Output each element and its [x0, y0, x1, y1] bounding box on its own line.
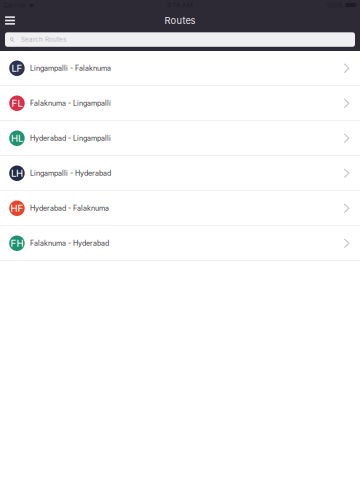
staticText: FL: [11, 97, 22, 109]
staticText: Falaknuma - Hyderabad: [30, 239, 109, 247]
staticText: Search Routes: [21, 36, 66, 43]
button[interactable]: Search Routes: [5, 32, 355, 47]
button[interactable]: LF: [0, 51, 360, 86]
button[interactable]: HF: [0, 191, 360, 226]
staticText: Lingampalli - Hyderabad: [30, 169, 111, 177]
staticText: LF: [11, 62, 22, 74]
staticText: HF: [10, 202, 23, 214]
staticText: FH: [10, 237, 23, 249]
button[interactable]: FL: [0, 86, 360, 121]
staticText: Lingampalli - Falaknuma: [30, 64, 111, 72]
staticText: Carrier: [3, 1, 26, 9]
button[interactable]: HL: [0, 121, 360, 156]
staticText: Routes: [164, 15, 195, 26]
staticText: Hyderabad - Lingampalli: [30, 134, 111, 142]
button[interactable]: LH: [0, 156, 360, 191]
button[interactable]: FH: [0, 226, 360, 261]
staticText: HL: [11, 132, 23, 144]
staticText: LH: [11, 167, 23, 179]
button[interactable]: Menu: [0, 10, 24, 31]
staticText: 100%: [326, 1, 343, 9]
staticText: Hyderabad - Falaknuma: [30, 204, 109, 212]
staticText: 9:18 AM: [167, 1, 193, 9]
staticText: Falaknuma - Lingampalli: [30, 99, 111, 107]
